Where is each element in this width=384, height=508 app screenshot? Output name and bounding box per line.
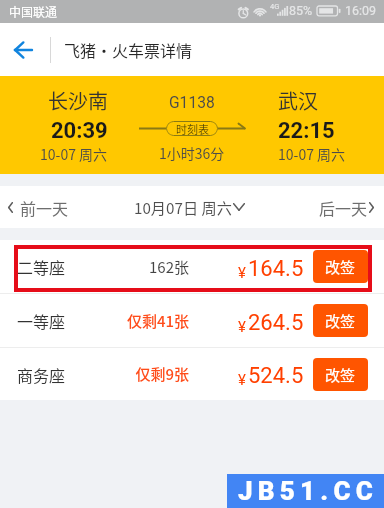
button[interactable]: Back [0,23,46,76]
staticText: 中国联通 [9,3,58,20]
staticText: ¥ [238,318,246,336]
staticText: 4G [270,2,280,11]
staticText: 长沙南 [48,86,108,115]
staticText: 85% [289,3,313,18]
button[interactable]: 10月07日 周六 [134,186,245,228]
staticText: 二等座 [17,255,66,278]
staticText: 164.5 [248,256,304,282]
staticText: 16:09 [345,3,377,18]
staticText: 10月07日 周六 [134,196,232,218]
staticText: 后一天 [319,196,368,219]
staticText: 162张 [89,256,189,278]
staticText: 改签 [325,310,356,332]
staticText: 前一天 [20,196,69,219]
staticText: 1小时36分 [159,143,225,163]
staticText: ¥ [238,371,246,389]
staticText: 264.5 [248,310,304,336]
button[interactable]: 前一天 [0,186,81,228]
staticText: 10-07 周六 [278,144,346,164]
staticText: 一等座 [17,309,66,332]
staticText: 22:15 [278,118,335,144]
staticText: 武汉 [278,86,318,115]
button[interactable]: 改签 [313,358,368,391]
staticText: 时刻表 [176,121,209,136]
button[interactable]: 改签 [313,304,368,337]
staticText: 10-07 周六 [40,144,108,164]
staticText: 524.5 [248,363,304,389]
button[interactable]: 一等座 [0,294,384,347]
staticText: 飞猪·火车票详情 [64,38,193,61]
staticText: 商务座 [17,363,66,386]
button[interactable]: 时刻表 [166,121,218,136]
button[interactable]: 后一天 [307,186,384,228]
button[interactable]: 商务座 [0,348,384,400]
button[interactable]: 二等座 [0,240,384,293]
staticText: 仅剩41张 [89,310,189,332]
staticText: 仅剩9张 [89,363,189,385]
button[interactable]: 改签 [313,250,368,283]
staticText: G1138 [169,94,215,112]
staticText: 改签 [325,364,356,386]
staticText: ¥ [238,264,246,282]
staticText: JB51.CC [238,476,378,506]
staticText: 改签 [325,256,356,278]
staticText: 20:39 [51,118,108,144]
